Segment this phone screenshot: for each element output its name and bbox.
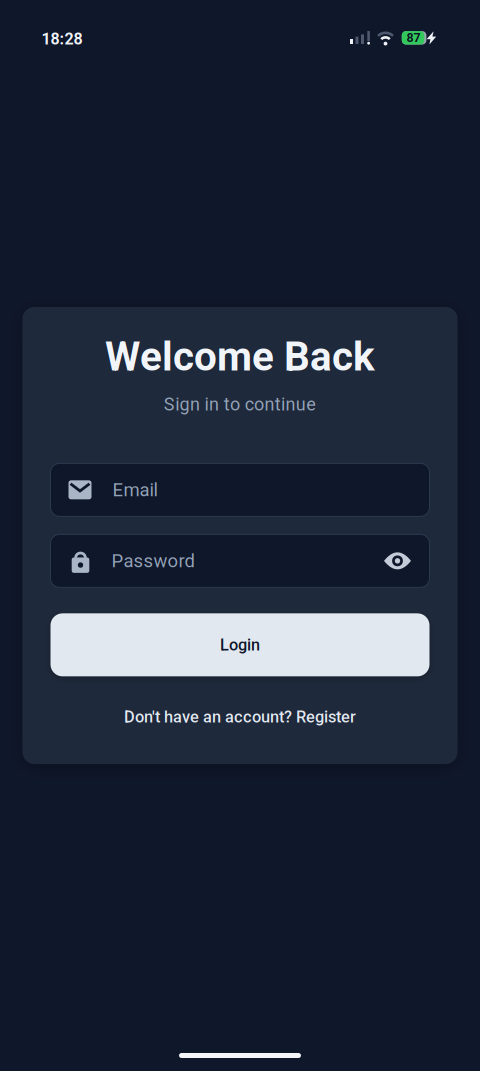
staticText: Password bbox=[111, 550, 194, 572]
button[interactable]: Don't have an account? Register bbox=[124, 707, 356, 727]
button[interactable]: Show password bbox=[383, 551, 411, 570]
button[interactable]: Login bbox=[50, 613, 429, 676]
staticText: Welcome Back bbox=[105, 333, 375, 380]
staticText: Sign in to continue bbox=[164, 394, 316, 415]
staticText: 18:28 bbox=[41, 30, 82, 48]
button[interactable]: Password bbox=[50, 534, 429, 587]
staticText: Login bbox=[220, 635, 260, 654]
staticText: Email bbox=[112, 479, 157, 501]
staticText: Don't have an account? Register bbox=[124, 707, 356, 727]
staticText: 87 bbox=[406, 30, 420, 45]
button[interactable]: Email bbox=[50, 463, 429, 516]
